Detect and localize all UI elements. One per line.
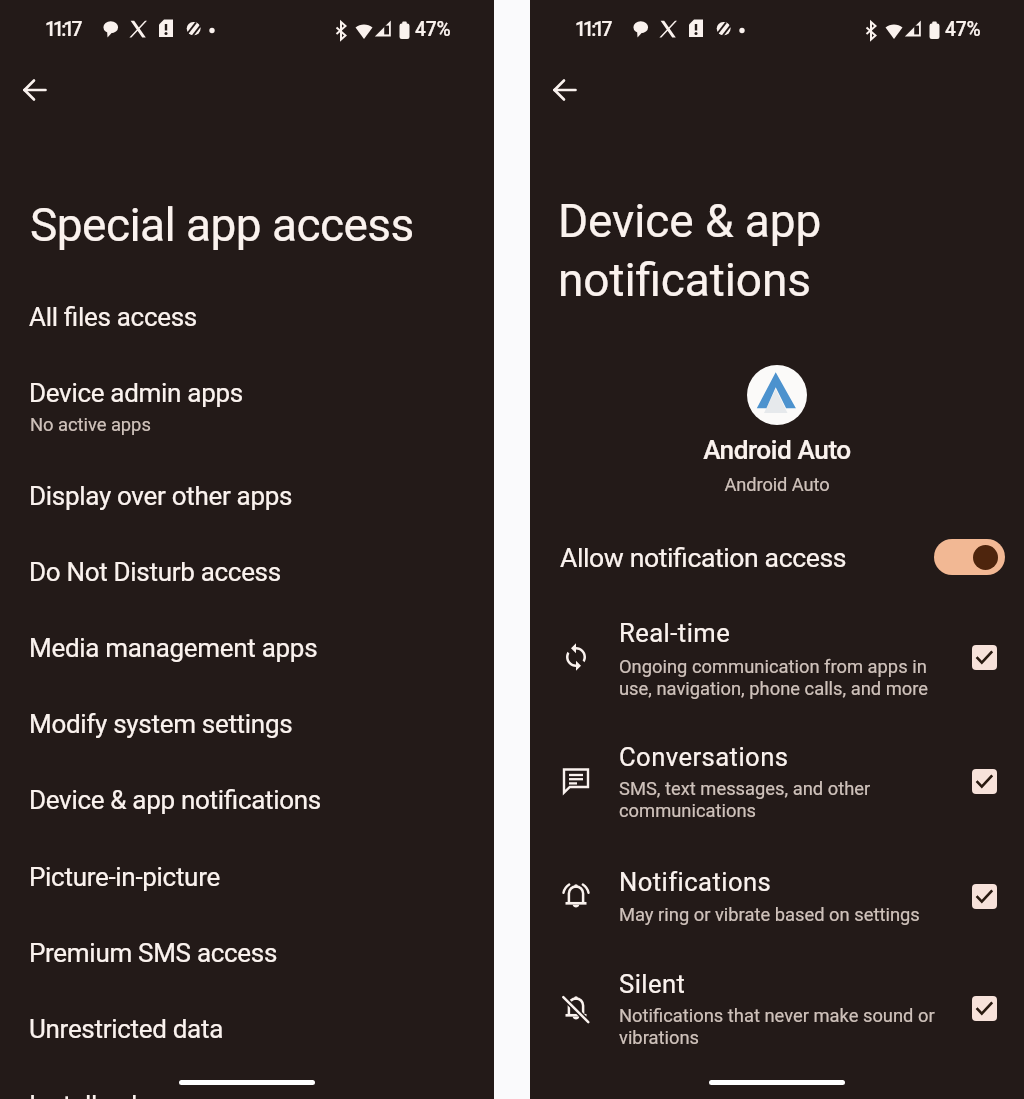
button[interactable]: Picture-in-picture	[0, 845, 494, 921]
staticText: May ring or vibrate based on settings	[619, 904, 920, 926]
staticText: Device & app	[558, 194, 822, 248]
button[interactable]: Conversations	[530, 732, 1024, 856]
button[interactable]: Modify system settings	[0, 692, 494, 768]
staticText: No active apps	[30, 414, 151, 436]
staticText: Special app access	[30, 198, 414, 252]
button[interactable]: Notifications	[530, 856, 1024, 958]
button[interactable]: Premium SMS access	[0, 921, 494, 997]
staticText: Picture-in-picture	[29, 862, 220, 892]
staticText: Install unknown apps	[29, 1090, 268, 1099]
staticText: Android Auto	[530, 474, 1024, 495]
button[interactable]: Allow notification access	[530, 522, 1024, 594]
staticText: All files access	[29, 302, 197, 332]
staticText: SMS, text messages, and other	[619, 778, 871, 800]
staticText: 11:17	[575, 18, 610, 41]
staticText: Device admin apps	[29, 378, 243, 408]
staticText: Media management apps	[29, 633, 318, 663]
button[interactable]: Media management apps	[0, 616, 494, 692]
staticText: Do Not Disturb access	[29, 557, 281, 587]
button[interactable]: Conversations, checked	[972, 769, 997, 794]
button[interactable]: Notifications, checked	[972, 884, 997, 909]
button[interactable]: Install unknown apps	[0, 1073, 494, 1099]
staticText: Modify system settings	[29, 709, 293, 739]
staticText: communications	[619, 800, 757, 822]
staticText: Allow notification access	[560, 542, 847, 573]
button[interactable]: Device & app notifications	[0, 768, 494, 844]
staticText: notifications	[558, 253, 811, 307]
button[interactable]: Silent	[530, 958, 1024, 1082]
button[interactable]: Allow notification access toggle, on	[934, 539, 1005, 575]
staticText: Silent	[619, 969, 686, 999]
staticText: 47%	[945, 18, 981, 41]
staticText: Android Auto	[530, 435, 1024, 466]
staticText: Device & app notifications	[29, 785, 321, 815]
button[interactable]: Unrestricted data	[0, 997, 494, 1073]
staticText: Notifications	[619, 867, 772, 897]
button[interactable]: Back	[14, 69, 56, 111]
staticText: 47%	[415, 18, 451, 41]
staticText: Conversations	[619, 742, 789, 772]
staticText: Display over other apps	[29, 481, 293, 511]
staticText: Premium SMS access	[29, 938, 278, 968]
button[interactable]: Real-time	[530, 608, 1024, 732]
staticText: Real-time	[619, 618, 731, 648]
button[interactable]: Real-time, checked	[972, 645, 997, 670]
staticText: use, navigation, phone calls, and more	[619, 678, 929, 700]
button[interactable]: Display over other apps	[0, 464, 494, 540]
button[interactable]: Device admin apps	[0, 361, 494, 463]
staticText: 11:17	[45, 18, 80, 41]
staticText: Unrestricted data	[29, 1014, 224, 1044]
button[interactable]: Silent, checked	[972, 996, 997, 1021]
staticText: Notifications that never make sound or	[619, 1005, 935, 1027]
button[interactable]: All files access	[0, 285, 494, 361]
button[interactable]: Back	[544, 69, 586, 111]
staticText: Ongoing communication from apps in	[619, 656, 927, 678]
button[interactable]: Do Not Disturb access	[0, 540, 494, 616]
staticText: vibrations	[619, 1027, 700, 1049]
